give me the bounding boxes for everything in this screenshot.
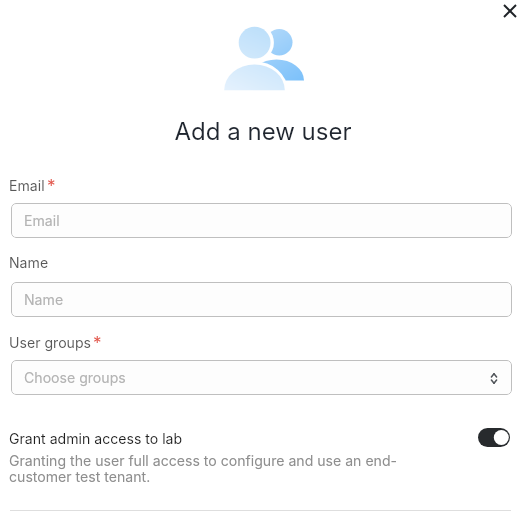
staticText: Email	[24, 212, 60, 229]
staticText: Name	[24, 291, 64, 308]
staticText: Choose groups	[24, 369, 126, 386]
staticText: Granting the user full access to configu…	[9, 452, 413, 485]
button[interactable]: Close	[495, 0, 523, 24]
staticText: Email	[9, 177, 45, 194]
staticText: Add a new user	[0, 117, 528, 146]
staticText: Name	[9, 254, 49, 271]
button[interactable]: Email	[11, 203, 512, 238]
staticText: Grant admin access to lab	[9, 430, 183, 447]
button[interactable]: Grant admin access to lab toggle	[478, 428, 510, 447]
button[interactable]: Name	[11, 282, 512, 317]
staticText: *	[47, 176, 56, 197]
staticText: User groups	[9, 334, 91, 351]
button[interactable]: Grant admin access to lab	[0, 430, 530, 485]
staticText: *	[93, 333, 102, 354]
button[interactable]: Choose groups	[11, 360, 512, 395]
